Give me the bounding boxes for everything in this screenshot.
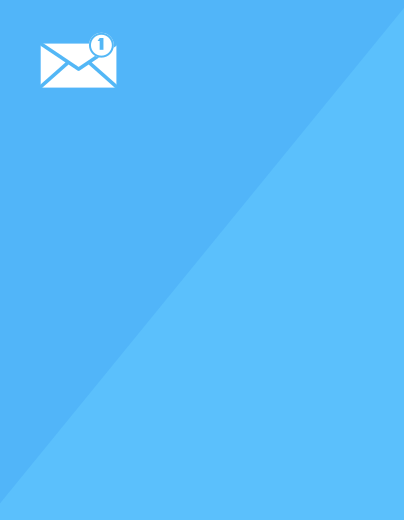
button[interactable]: 1 unread message [0,0,404,520]
